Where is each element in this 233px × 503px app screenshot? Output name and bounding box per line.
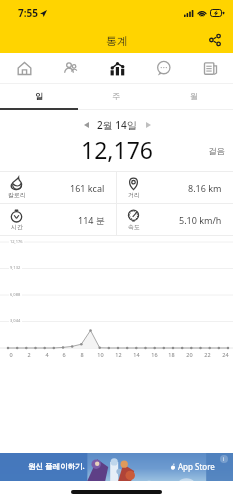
- button[interactable]: Share: [203, 28, 227, 52]
- staticText: 속도: [128, 223, 140, 231]
- staticText: 3,044: [10, 318, 21, 323]
- staticText: 114 분: [78, 214, 105, 226]
- staticText: 9,132: [10, 265, 21, 270]
- button[interactable]: 칼로리: [0, 172, 116, 203]
- button[interactable]: Statistics: [94, 53, 140, 83]
- staticText: 18: [168, 351, 175, 358]
- button[interactable]: Advertisement: [0, 453, 233, 481]
- staticText: 10: [97, 351, 104, 358]
- button[interactable]: 일: [0, 84, 77, 110]
- staticText: 칼로리: [8, 191, 26, 199]
- staticText: 24: [222, 351, 229, 358]
- staticText: 0: [9, 351, 13, 358]
- button[interactable]: 시간: [0, 204, 116, 235]
- button[interactable]: 월: [155, 84, 233, 110]
- button[interactable]: Previous day: [77, 116, 95, 134]
- staticText: 14: [133, 351, 140, 358]
- button[interactable]: 주: [77, 84, 155, 110]
- staticText: 8.16 km: [188, 182, 222, 194]
- staticText: 20: [186, 351, 193, 358]
- staticText: 시간: [11, 223, 23, 231]
- staticText: 5.10 km/h: [179, 214, 222, 226]
- staticText: 161 kcal: [70, 182, 105, 194]
- button[interactable]: Friends: [47, 53, 93, 83]
- staticText: 4: [45, 351, 49, 358]
- button[interactable]: Chat: [140, 53, 186, 83]
- staticText: 7:55: [18, 6, 38, 20]
- staticText: 6: [62, 351, 66, 358]
- staticText: 원신 플레이하기.: [28, 461, 85, 471]
- staticText: 거리: [128, 191, 140, 199]
- button[interactable]: 거리: [117, 172, 233, 203]
- button[interactable]: Next day: [139, 116, 157, 134]
- staticText: 12: [115, 351, 122, 358]
- staticText: 월: [190, 91, 198, 101]
- button[interactable]: 속도: [117, 204, 233, 235]
- staticText: 16: [151, 351, 158, 358]
- staticText: 8: [80, 351, 84, 358]
- button[interactable]: Home: [1, 53, 47, 83]
- staticText: 주: [112, 91, 120, 101]
- button[interactable]: News: [187, 53, 233, 83]
- staticText: 걸음: [208, 146, 225, 157]
- staticText: 통계: [106, 34, 128, 48]
- staticText: 일: [35, 91, 43, 101]
- button[interactable]: Ad info: [220, 455, 228, 463]
- staticText: 12,176: [81, 134, 153, 165]
- staticText: 2월 14일: [97, 118, 137, 132]
- staticText: i: [223, 456, 225, 463]
- staticText: App Store: [178, 461, 215, 472]
- staticText: 6,088: [10, 292, 21, 297]
- staticText: 12,176: [10, 239, 23, 244]
- staticText: 22: [204, 351, 211, 358]
- staticText: 2: [27, 351, 31, 358]
